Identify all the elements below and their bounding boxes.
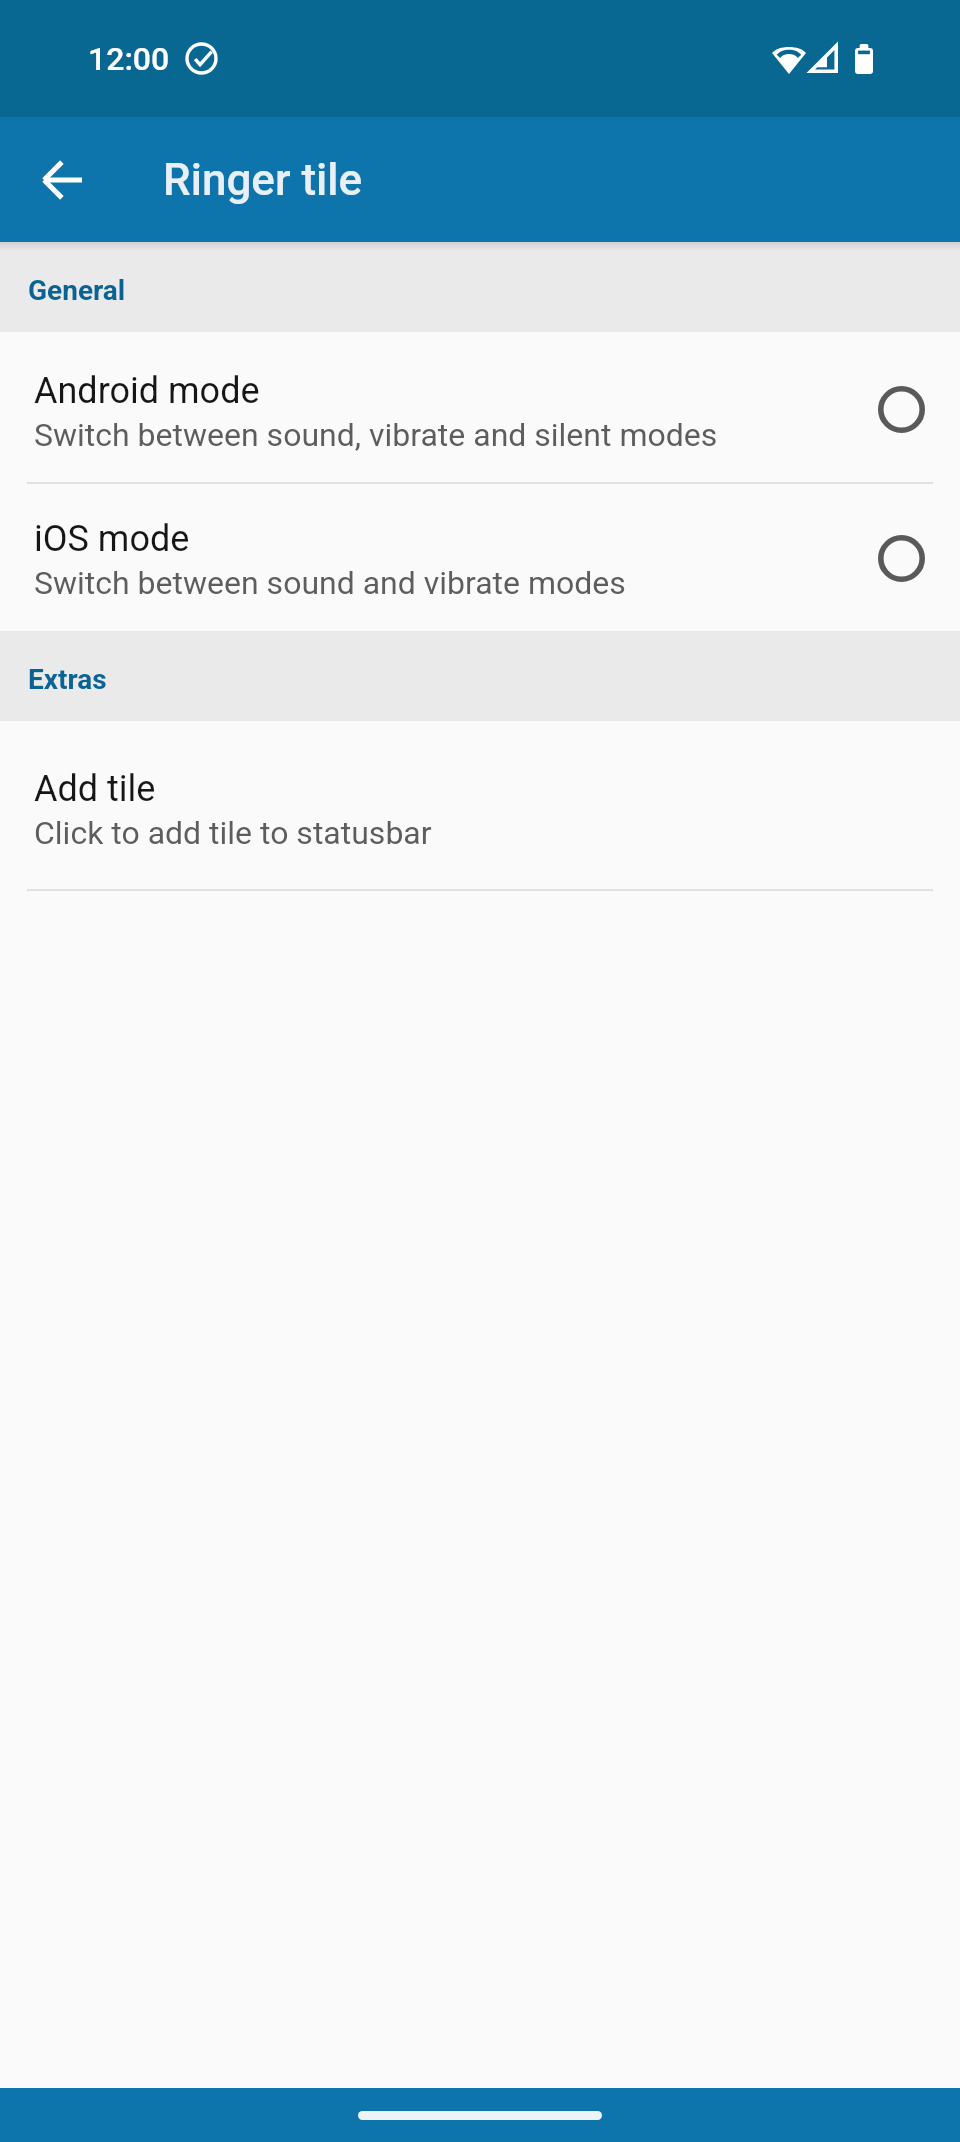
staticText: Extras (28, 663, 107, 696)
staticText: 12:00 (88, 40, 170, 78)
button[interactable]: iOS mode (0, 480, 960, 631)
button[interactable]: Home (358, 2111, 602, 2120)
staticText: iOS mode (34, 518, 190, 560)
button[interactable]: Add tile (0, 721, 960, 888)
staticText: Switch between sound, vibrate and silent… (34, 416, 718, 454)
button[interactable]: Android mode (0, 332, 960, 480)
staticText: Android mode (34, 370, 260, 412)
staticText: Switch between sound and vibrate modes (34, 564, 626, 602)
button[interactable]: Navigate up (0, 117, 126, 242)
staticText: General (28, 274, 126, 307)
staticText: Click to add tile to statusbar (34, 814, 432, 852)
button[interactable]: Select Android mode (842, 332, 960, 480)
staticText: Add tile (34, 768, 156, 810)
button[interactable]: Select iOS mode (842, 480, 960, 631)
staticText: Ringer tile (163, 154, 363, 206)
